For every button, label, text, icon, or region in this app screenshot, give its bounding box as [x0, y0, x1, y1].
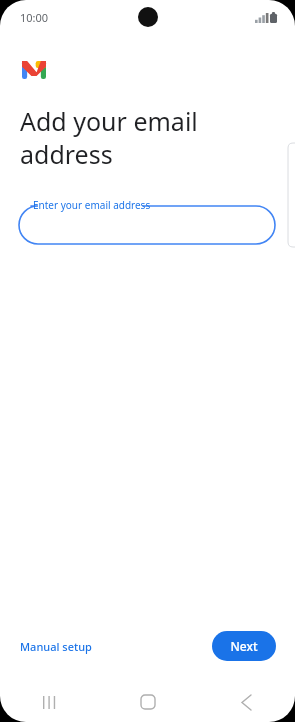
button[interactable]: Home	[99, 682, 197, 722]
staticText: Next	[230, 638, 258, 654]
staticText: Add your email address	[20, 104, 198, 171]
button[interactable]: Next	[212, 631, 276, 661]
staticText: Enter your email address	[33, 198, 151, 212]
button[interactable]: Back	[197, 682, 295, 722]
button[interactable]	[19, 206, 275, 244]
button[interactable]: Manual setup	[12, 633, 100, 660]
staticText: 10:00	[20, 10, 49, 25]
staticText: Manual setup	[20, 639, 92, 654]
button[interactable]: Recent apps	[0, 682, 99, 722]
